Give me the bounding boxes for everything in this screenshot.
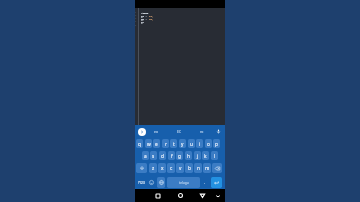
button[interactable]: l: [211, 151, 218, 160]
staticText: w: [147, 141, 151, 147]
button[interactable]: p: [213, 139, 220, 148]
button[interactable]: m: [203, 163, 211, 173]
staticText: e: [155, 141, 158, 147]
staticText: g: [178, 153, 181, 159]
button[interactable]: k: [202, 151, 209, 160]
button[interactable]: Switch language: [157, 177, 165, 188]
staticText: telugu: [179, 181, 189, 185]
button[interactable]: Expand suggestions: [138, 128, 146, 136]
button[interactable]: s: [150, 151, 157, 160]
button[interactable]: .: [201, 177, 208, 188]
button[interactable]: v: [176, 163, 184, 173]
button[interactable]: w: [145, 139, 152, 148]
staticText: q: [138, 141, 141, 147]
button[interactable]: x: [158, 163, 166, 173]
button[interactable]: c: [167, 163, 175, 173]
button[interactable]: Recents: [152, 189, 164, 202]
button[interactable]: eo: [148, 126, 164, 137]
staticText: 1: [135, 11, 137, 14]
button[interactable]: telugu: [167, 177, 200, 188]
button[interactable]: d: [159, 151, 166, 160]
button[interactable]: Shift: [136, 163, 147, 173]
button[interactable]: t: [170, 139, 177, 148]
staticText: l: [214, 153, 216, 159]
staticText: r: [165, 141, 167, 147]
button[interactable]: f: [168, 151, 175, 160]
staticText: EC: [177, 129, 182, 134]
staticText: =: [144, 14, 149, 17]
button[interactable]: Home: [174, 189, 186, 202]
button[interactable]: Hide keyboard: [212, 189, 224, 202]
staticText: o: [207, 141, 210, 147]
button[interactable]: i: [196, 139, 203, 148]
button[interactable]: Backspace: [212, 163, 222, 173]
button[interactable]: ro: [194, 126, 210, 137]
staticText: 2: [135, 14, 137, 17]
staticText: v: [179, 165, 182, 171]
staticText: p: [215, 141, 218, 147]
staticText: b: [188, 165, 191, 171]
staticText: <?php: [141, 11, 149, 14]
staticText: $c: [141, 20, 144, 23]
button[interactable]: a: [142, 151, 149, 160]
staticText: 4: [135, 20, 137, 23]
staticText: f: [171, 153, 173, 159]
button[interactable]: ?123: [137, 177, 146, 188]
button[interactable]: EC: [171, 126, 187, 137]
staticText: 20;: [149, 17, 154, 20]
button[interactable]: h: [185, 151, 192, 160]
button[interactable]: Voice input: [215, 126, 222, 137]
staticText: h: [187, 153, 190, 159]
staticText: n: [197, 165, 200, 171]
button[interactable]: b: [185, 163, 193, 173]
button[interactable]: n: [194, 163, 202, 173]
staticText: z: [152, 165, 155, 171]
staticText: i: [199, 141, 201, 147]
staticText: .: [204, 180, 206, 185]
staticText: 10;: [149, 14, 154, 17]
button[interactable]: g: [176, 151, 183, 160]
button[interactable]: z: [149, 163, 157, 173]
staticText: x: [161, 165, 164, 171]
button[interactable]: q: [136, 139, 143, 148]
staticText: s: [152, 153, 155, 159]
staticText: m: [205, 165, 210, 171]
staticText: $b: [141, 17, 144, 20]
staticText: y: [181, 141, 184, 147]
staticText: =: [144, 17, 149, 20]
staticText: ?123: [138, 181, 145, 185]
staticText: a: [144, 153, 147, 159]
button[interactable]: j: [194, 151, 201, 160]
staticText: ro: [200, 129, 204, 134]
button[interactable]: u: [188, 139, 195, 148]
staticText: d: [161, 153, 164, 159]
staticText: eo: [154, 129, 158, 134]
staticText: j: [197, 153, 199, 159]
button[interactable]: Enter: [211, 177, 222, 188]
staticText: c: [170, 165, 173, 171]
button[interactable]: Emoji: [148, 177, 155, 188]
button[interactable]: o: [205, 139, 212, 148]
staticText: t: [173, 141, 175, 147]
staticText: k: [204, 153, 207, 159]
button[interactable]: Back: [196, 189, 208, 202]
button[interactable]: r: [162, 139, 169, 148]
staticText: 3: [135, 17, 137, 20]
button[interactable]: e: [153, 139, 160, 148]
staticText: 5: [135, 24, 137, 27]
staticText: $a: [141, 14, 144, 17]
button[interactable]: y: [179, 139, 186, 148]
staticText: u: [190, 141, 193, 147]
